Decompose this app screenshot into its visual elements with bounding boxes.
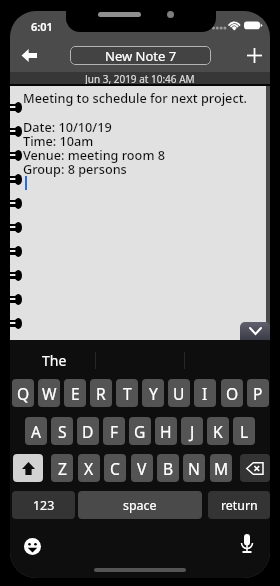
button[interactable]: L <box>233 417 255 445</box>
staticText: U <box>173 383 185 404</box>
staticText: 123 <box>33 497 55 514</box>
button[interactable]: T <box>116 379 138 407</box>
button[interactable]: Shift <box>13 454 43 482</box>
staticText: B <box>163 458 174 479</box>
staticText: M <box>214 458 229 479</box>
staticText: E <box>71 383 80 404</box>
button[interactable]: I <box>194 379 216 407</box>
button[interactable]: H <box>155 417 177 445</box>
button[interactable]: O <box>221 379 243 407</box>
staticText: space <box>123 497 157 514</box>
button[interactable]: J <box>181 417 203 445</box>
button[interactable]: Y <box>142 379 164 407</box>
staticText: I <box>202 383 208 404</box>
staticText: G <box>134 421 146 442</box>
button[interactable]: Q <box>12 379 34 407</box>
button[interactable]: V <box>131 454 153 482</box>
button[interactable]: S <box>51 417 73 445</box>
staticText: X <box>84 458 94 479</box>
staticText: R <box>96 383 106 404</box>
staticText: N <box>188 458 200 479</box>
button[interactable]: X <box>78 454 100 482</box>
staticText: V <box>137 458 147 479</box>
staticText: Z <box>58 458 67 479</box>
staticText: C <box>110 458 120 479</box>
staticText: P <box>253 383 263 404</box>
staticText: Venue: meeting room 8 <box>23 146 165 163</box>
button[interactable]: space <box>78 491 202 519</box>
staticText: New Note 7 <box>105 47 177 65</box>
staticText: L <box>240 421 249 442</box>
button[interactable]: return <box>208 491 270 519</box>
button[interactable]: Add note <box>239 42 269 68</box>
button[interactable]: Backspace <box>240 454 270 482</box>
staticText: Time: 10am <box>23 132 94 149</box>
button[interactable]: Emoji keyboard <box>19 533 45 559</box>
staticText: H <box>160 421 172 442</box>
staticText: Meeting to schedule for next project. <box>23 89 247 106</box>
staticText: Y <box>149 383 158 404</box>
button[interactable]: W <box>38 379 60 407</box>
staticText: D <box>82 421 94 442</box>
button[interactable]: E <box>64 379 86 407</box>
staticText: The <box>42 351 67 370</box>
staticText: F <box>110 421 119 442</box>
button[interactable]: New Note 7 <box>70 46 211 65</box>
button[interactable]: Z <box>51 454 73 482</box>
staticText: J <box>190 421 195 442</box>
button[interactable]: P <box>247 379 269 407</box>
button[interactable]: M <box>210 454 232 482</box>
button[interactable]: A <box>25 417 47 445</box>
staticText: O <box>226 383 239 404</box>
button[interactable]: B <box>157 454 179 482</box>
staticText: Group: 8 persons <box>23 160 127 177</box>
staticText: 6:01 <box>31 19 53 34</box>
staticText: T <box>123 383 132 404</box>
button[interactable]: U <box>168 379 190 407</box>
button[interactable]: D <box>77 417 99 445</box>
button[interactable]: F <box>103 417 125 445</box>
button[interactable]: N <box>183 454 205 482</box>
button[interactable]: Hide keyboard <box>240 322 270 340</box>
staticText: K <box>213 421 223 442</box>
staticText: A <box>31 421 41 442</box>
staticText: Jun 3, 2019 at 10:46 AM <box>85 72 195 84</box>
staticText: W <box>42 383 57 404</box>
button[interactable]: C <box>104 454 126 482</box>
button[interactable]: Back <box>12 42 46 68</box>
button[interactable]: G <box>129 417 151 445</box>
button[interactable]: K <box>207 417 229 445</box>
button[interactable]: R <box>90 379 112 407</box>
button[interactable]: 123 <box>12 491 75 519</box>
staticText: Date: 10/10/19 <box>23 118 112 135</box>
staticText: Q <box>17 383 30 404</box>
staticText: return <box>221 497 258 514</box>
button[interactable]: Dictate <box>234 531 260 557</box>
staticText: S <box>58 421 67 442</box>
